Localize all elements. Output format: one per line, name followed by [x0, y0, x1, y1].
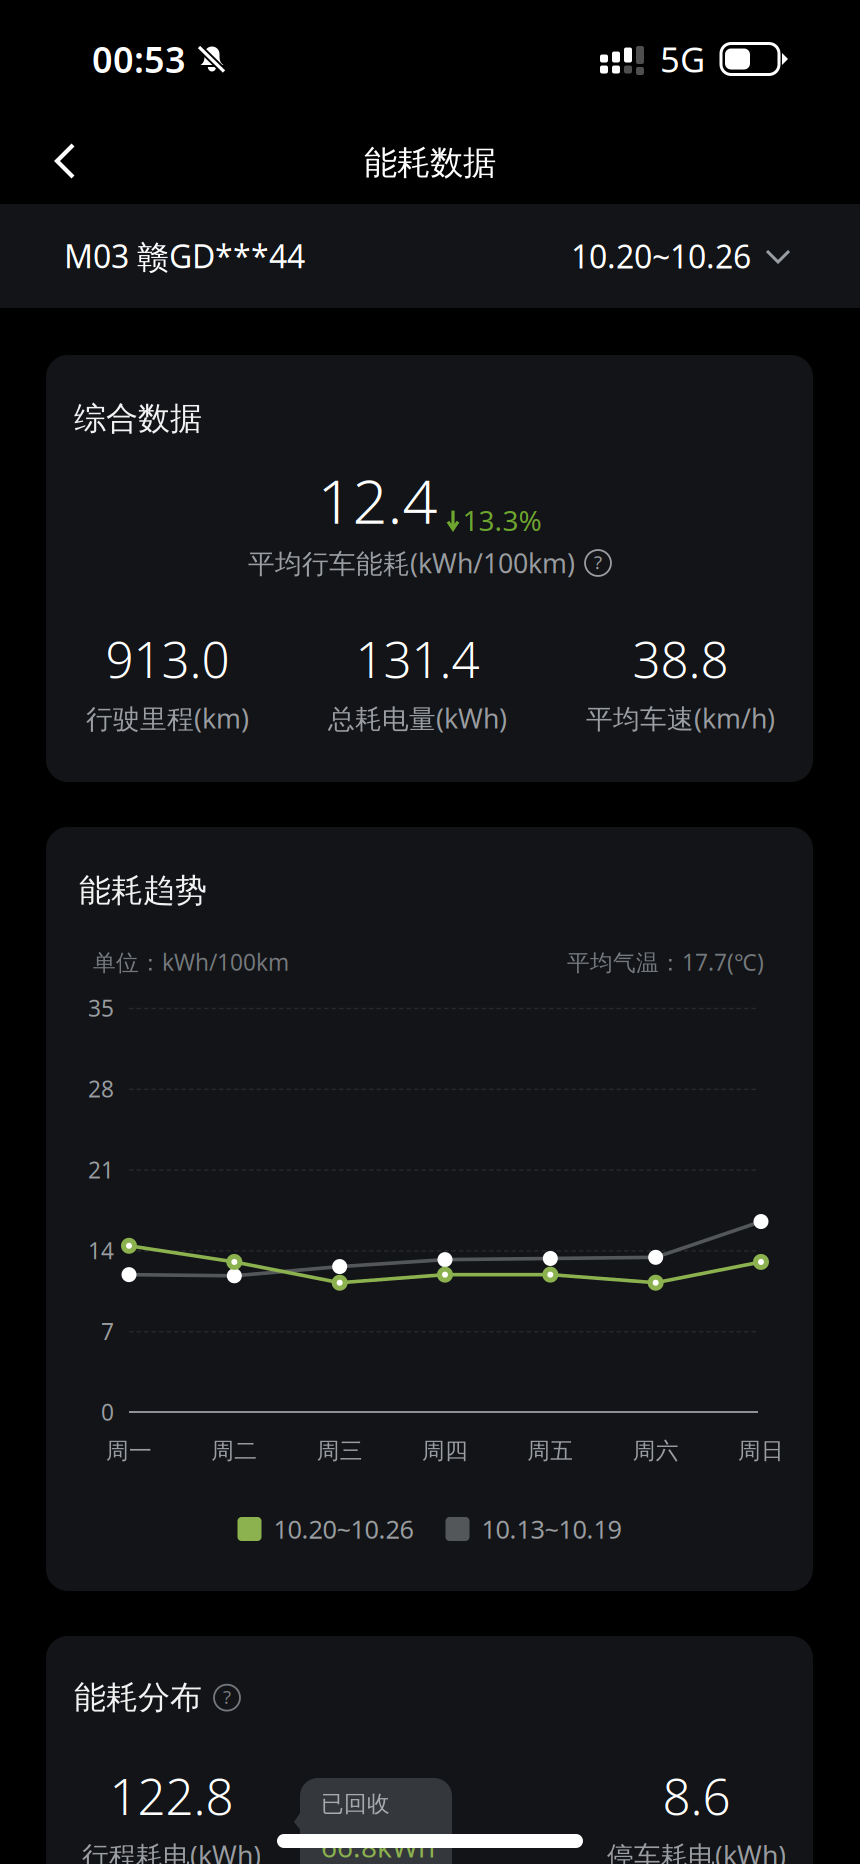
staticText: 周二 [211, 1437, 257, 1465]
staticText: 平均行车能耗(kWh/100km) [248, 545, 575, 581]
staticText: 10.20~10.26 [571, 235, 751, 277]
staticText: ? [594, 550, 602, 574]
staticText: 停车耗电(kWh) [607, 1837, 786, 1864]
staticText: 28 [88, 1074, 114, 1104]
staticText: 行驶里程(km) [86, 700, 249, 736]
staticText: 能耗趋势 [79, 871, 207, 910]
staticText: 38.8 [632, 626, 728, 691]
staticText: 平均车速(km/h) [586, 700, 775, 736]
staticText: 周三 [317, 1437, 363, 1465]
staticText: 00:53 [92, 35, 186, 83]
staticText: 平均气温：17.7(℃) [567, 947, 764, 977]
staticText: 0 [101, 1397, 114, 1427]
staticText: 12.4 [317, 459, 437, 541]
button[interactable]: 10.20~10.26 [571, 235, 791, 277]
staticText: 行程耗电(kWh) [82, 1837, 261, 1864]
staticText: 周四 [422, 1437, 468, 1465]
staticText: 综合数据 [74, 399, 202, 438]
staticText: 能耗分布 [74, 1678, 202, 1717]
staticText: 13.3% [462, 501, 541, 539]
staticText: 能耗数据 [364, 142, 496, 183]
staticText: 7 [101, 1316, 114, 1346]
staticText: 周五 [527, 1437, 573, 1465]
staticText: 21 [88, 1154, 114, 1185]
staticText: M03 赣GD***44 [64, 235, 305, 277]
staticText: 10.13~10.19 [481, 1512, 621, 1546]
staticText: 总耗电量(kWh) [328, 700, 507, 736]
staticText: 已回收 [321, 1790, 390, 1818]
staticText: 913.0 [105, 626, 229, 691]
staticText: ? [223, 1684, 231, 1709]
staticText: 14 [88, 1235, 114, 1265]
staticText: 单位：kWh/100km [93, 947, 289, 977]
staticText: 周六 [633, 1437, 679, 1465]
button[interactable]: 返回 [20, 118, 112, 204]
staticText: 8.6 [662, 1763, 730, 1828]
staticText: 周日 [738, 1437, 784, 1465]
staticText: 66.8kWh [321, 1828, 435, 1864]
staticText: 5G [660, 36, 705, 82]
staticText: 周一 [106, 1437, 152, 1465]
staticText: 131.4 [355, 626, 479, 691]
staticText: 122.8 [109, 1763, 233, 1828]
staticText: 35 [88, 993, 114, 1023]
staticText: 10.20~10.26 [273, 1512, 413, 1546]
